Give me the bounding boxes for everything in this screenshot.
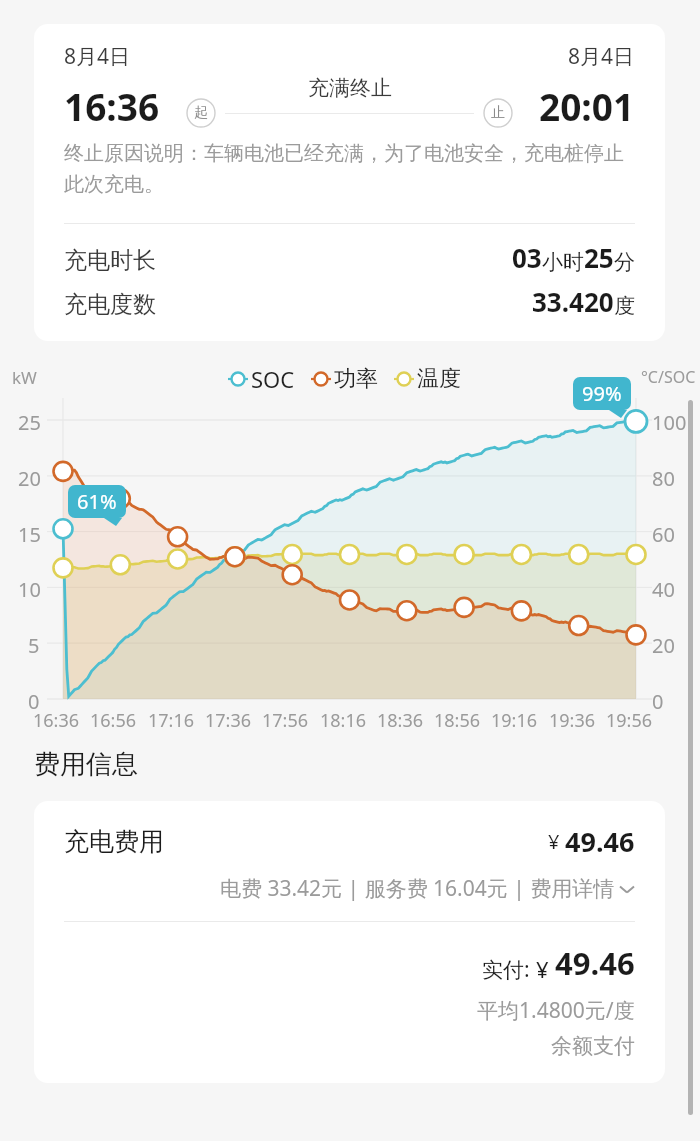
- staticText: ¥: [548, 828, 565, 855]
- staticText: 0: [652, 688, 664, 715]
- staticText: 18:16: [320, 708, 367, 733]
- staticText: 16:36: [64, 81, 160, 131]
- staticText: 分: [614, 249, 635, 275]
- staticText: 19:36: [549, 708, 596, 733]
- button[interactable]: 电费 33.42元 | 服务费 16.04元 | 费用详情: [64, 874, 635, 903]
- staticText: 度: [614, 293, 635, 319]
- staticText: 费用信息: [34, 748, 138, 781]
- staticText: 5: [28, 632, 40, 659]
- button[interactable]: 8月4日: [34, 24, 665, 341]
- staticText: 实付:: [482, 955, 536, 984]
- staticText: ¥: [536, 954, 555, 984]
- staticText: 61%: [77, 488, 117, 515]
- staticText: 25: [18, 409, 41, 436]
- staticText: 49.46: [555, 942, 635, 984]
- staticText: 功率: [334, 365, 378, 393]
- staticText: 16:56: [90, 708, 137, 733]
- staticText: 17:36: [205, 708, 252, 733]
- staticText: 0: [28, 688, 40, 715]
- staticText: 16:36: [33, 708, 80, 733]
- staticText: 10: [18, 576, 41, 603]
- staticText: 8月4日: [568, 42, 635, 71]
- staticText: 充电度数: [64, 290, 156, 319]
- staticText: 17:16: [148, 708, 195, 733]
- button[interactable]: SOC: [228, 364, 295, 394]
- staticText: 19:16: [491, 708, 538, 733]
- staticText: 余额支付: [551, 1033, 635, 1059]
- staticText: 20: [18, 465, 41, 492]
- staticText: 起: [194, 104, 208, 122]
- staticText: 平均1.4800元/度: [477, 996, 635, 1025]
- staticText: 100: [652, 409, 687, 436]
- staticText: 温度: [417, 365, 461, 393]
- staticText: 终止原因说明：车辆电池已经充满，为了电池安全，充电桩停止此次充电。: [64, 141, 635, 197]
- staticText: 80: [652, 465, 675, 492]
- staticText: 40: [652, 576, 675, 603]
- button[interactable]: 温度: [394, 365, 461, 393]
- staticText: 60: [652, 521, 675, 548]
- button[interactable]: 充电费用: [64, 823, 635, 860]
- staticText: 33.420: [532, 284, 614, 319]
- staticText: 电费 33.42元 | 服务费 16.04元 | 费用详情: [220, 874, 615, 903]
- staticText: 17:56: [262, 708, 309, 733]
- staticText: 18:36: [377, 708, 424, 733]
- staticText: 49.46: [565, 823, 635, 860]
- other: 展开费用详情: [619, 881, 635, 897]
- staticText: 18:56: [434, 708, 481, 733]
- staticText: 03: [512, 240, 542, 275]
- staticText: SOC: [251, 364, 295, 394]
- staticText: 25: [584, 240, 614, 275]
- staticText: kW: [12, 366, 37, 389]
- staticText: 15: [18, 521, 41, 548]
- staticText: °C/SOC: [641, 366, 696, 388]
- staticText: 99%: [582, 380, 622, 407]
- staticText: 止: [491, 104, 505, 122]
- staticText: 小时: [542, 249, 584, 275]
- staticText: 19:56: [606, 708, 653, 733]
- staticText: 充电费用: [64, 826, 164, 857]
- staticText: 充电时长: [64, 246, 156, 275]
- staticText: 充满终止: [308, 75, 392, 101]
- staticText: 20:01: [539, 81, 635, 131]
- button[interactable]: 功率: [311, 365, 378, 393]
- staticText: 8月4日: [64, 42, 131, 71]
- staticText: 20: [652, 632, 675, 659]
